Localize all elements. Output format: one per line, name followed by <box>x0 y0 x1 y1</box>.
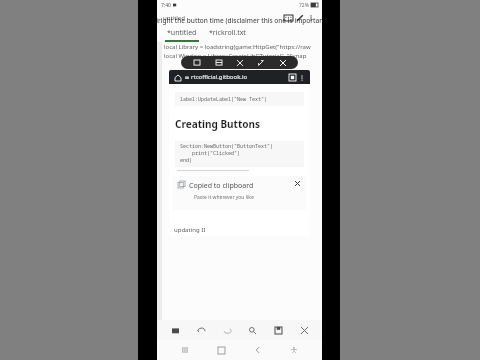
button[interactable]: Split screen <box>213 57 224 68</box>
staticText: end) <box>180 157 193 164</box>
staticText: local Library = loadstring(game:HttpGet(… <box>164 43 311 51</box>
staticText: Section:NewButton("ButtonText") <box>180 143 274 150</box>
button[interactable]: Redo <box>219 322 235 338</box>
staticText: Creating Buttons <box>175 117 260 131</box>
button[interactable]: Home <box>173 73 182 82</box>
button[interactable]: Open file <box>167 322 183 338</box>
staticText: label:UpdateLabel("New Text") <box>180 96 268 103</box>
staticText: Alright the button time (disclaimer this… <box>152 16 328 25</box>
staticText: *rickroll.txt <box>209 28 246 38</box>
button[interactable]: *rickroll.txt <box>209 28 246 42</box>
button[interactable]: Close <box>277 57 288 68</box>
button[interactable]: Close file <box>296 322 312 338</box>
button[interactable]: Back <box>250 342 266 358</box>
button[interactable]: Save <box>270 322 286 338</box>
button[interactable]: Search <box>244 322 260 338</box>
button[interactable]: Recents <box>177 342 193 358</box>
staticText: local Window = Library.CreateLib("Tutori… <box>164 52 307 60</box>
button[interactable]: More options <box>306 13 316 23</box>
staticText: 7:40 <box>161 2 171 9</box>
staticText: rtcofficial.gitbook.io <box>191 73 248 81</box>
button[interactable]: Dismiss <box>293 179 302 188</box>
staticText: print("Clicked") <box>180 150 241 157</box>
button[interactable]: Home <box>213 342 229 358</box>
button[interactable]: Minimize <box>234 57 245 68</box>
button[interactable]: Edit <box>294 12 306 24</box>
staticText: Paste it wherever you like <box>194 194 254 201</box>
staticText: Copied to clipboard <box>189 181 254 191</box>
button[interactable]: Tabs <box>287 72 297 82</box>
button[interactable]: Popup window <box>191 57 202 68</box>
button[interactable]: Accessibility <box>286 342 302 358</box>
button[interactable]: Undo <box>193 322 209 338</box>
staticText: updating II <box>174 226 206 234</box>
staticText: untitled <box>163 14 185 22</box>
button[interactable]: Keyboard <box>282 12 294 24</box>
button[interactable]: Browser menu <box>297 73 306 82</box>
button[interactable]: *untitled <box>157 28 199 42</box>
staticText: 72% <box>299 2 309 9</box>
button[interactable]: Expand <box>255 57 266 68</box>
staticText: *untitled <box>167 28 197 38</box>
